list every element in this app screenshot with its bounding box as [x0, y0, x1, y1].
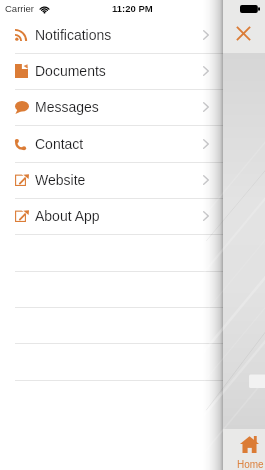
- staticText: Notifications: [35, 27, 112, 43]
- staticText: Home: [237, 459, 264, 470]
- staticText: Website: [35, 172, 86, 188]
- staticText: About App: [35, 208, 100, 224]
- button[interactable]: Documents: [0, 54, 265, 90]
- button[interactable]: Close menu: [229, 19, 258, 48]
- button[interactable]: Website: [0, 163, 265, 199]
- staticText: Documents: [35, 63, 106, 79]
- button[interactable]: Messages: [0, 90, 265, 126]
- staticText: Contact: [35, 136, 84, 152]
- button[interactable]: About App: [0, 199, 265, 235]
- staticText: 11:20 PM: [112, 3, 153, 14]
- button[interactable]: Contact: [0, 127, 265, 163]
- staticText: Carrier: [5, 3, 35, 14]
- button[interactable]: Home: [223, 429, 265, 470]
- staticText: Messages: [35, 99, 99, 115]
- button[interactable]: Notifications: [0, 18, 265, 54]
